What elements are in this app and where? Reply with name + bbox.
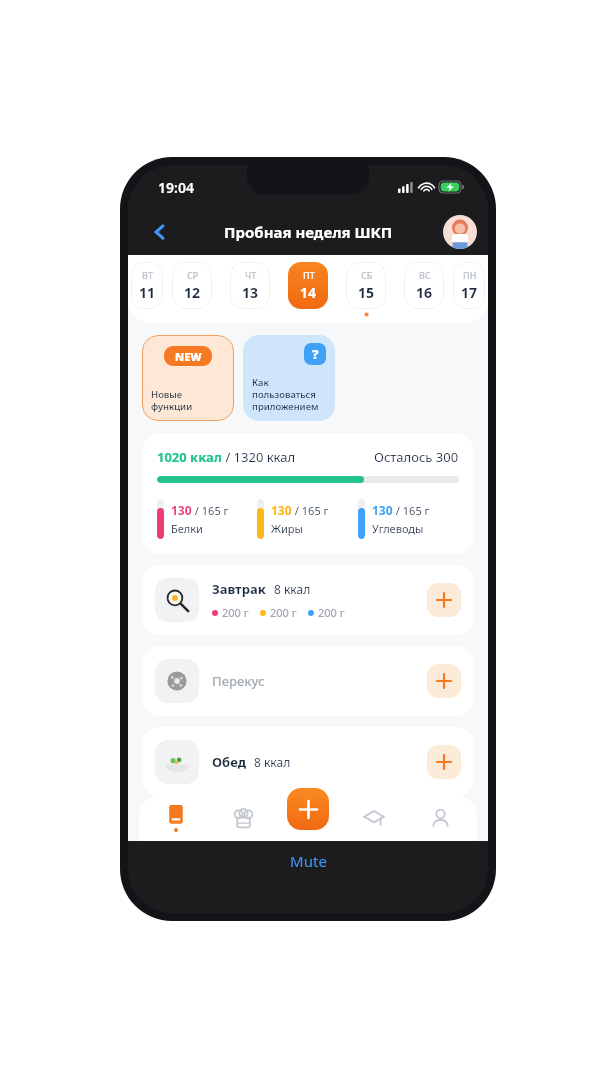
staticText: Новые функции xyxy=(151,388,193,413)
staticText: 8 ккал xyxy=(254,754,291,770)
staticText: Обед xyxy=(212,753,246,771)
staticText: 8 ккал xyxy=(274,581,311,597)
staticText: 14 xyxy=(300,283,317,302)
button[interactable]: ПТ xyxy=(288,262,328,309)
staticText: / 165 г xyxy=(292,503,329,518)
staticText: / 1320 ккал xyxy=(222,448,296,466)
staticText: 12 xyxy=(184,283,201,302)
staticText: СР xyxy=(187,269,199,281)
staticText: Белки xyxy=(171,521,203,536)
button[interactable]: Profile xyxy=(416,795,464,841)
button[interactable]: СР xyxy=(172,262,212,309)
button[interactable]: Learn xyxy=(350,795,398,841)
staticText: 15 xyxy=(358,283,375,302)
staticText: 200 г xyxy=(318,605,345,620)
button[interactable]: Add Завтрак xyxy=(427,583,461,617)
button[interactable]: Add Обед xyxy=(427,745,461,779)
button[interactable]: Back xyxy=(142,214,178,250)
button[interactable]: Обед xyxy=(142,727,474,797)
staticText: / 165 г xyxy=(393,503,430,518)
staticText: ПН xyxy=(463,269,477,281)
staticText: 19:04 xyxy=(158,178,194,197)
staticText: ЧТ xyxy=(245,269,257,281)
button[interactable]: ЧТ xyxy=(230,262,270,309)
staticText: Перекус xyxy=(212,672,265,690)
staticText: ВС xyxy=(419,269,431,281)
staticText: 16 xyxy=(416,283,433,302)
button[interactable]: ВС xyxy=(404,262,444,309)
button[interactable]: Mute xyxy=(290,851,327,871)
button[interactable]: Add Перекус xyxy=(427,664,461,698)
button[interactable]: Перекус xyxy=(142,646,474,716)
staticText: 13 xyxy=(242,283,259,302)
staticText: 130 xyxy=(372,502,393,518)
staticText: Жиры xyxy=(271,521,303,536)
staticText: ВТ xyxy=(142,269,153,281)
staticText: 17 xyxy=(461,283,478,302)
staticText: NEW xyxy=(175,349,202,364)
staticText: СБ xyxy=(361,269,373,281)
button[interactable]: Recipes xyxy=(219,795,267,841)
button[interactable]: Diary xyxy=(152,795,200,841)
button[interactable]: 1020 ккал xyxy=(142,433,474,554)
button[interactable]: Завтрак xyxy=(142,565,474,635)
button[interactable]: NEW xyxy=(142,335,234,421)
staticText: / 165 г xyxy=(192,503,229,518)
button[interactable]: ВТ xyxy=(131,262,163,309)
staticText: Завтрак xyxy=(212,580,266,598)
staticText: 200 г xyxy=(222,605,249,620)
button[interactable]: Add xyxy=(287,788,329,830)
button[interactable]: ПН xyxy=(453,262,485,309)
staticText: Пробная неделя ШКП xyxy=(224,222,393,242)
staticText: 130 xyxy=(171,502,192,518)
button[interactable]: СБ xyxy=(346,262,386,309)
staticText: Как пользоваться приложением xyxy=(252,376,319,413)
staticText: Осталось 300 xyxy=(374,448,459,466)
staticText: 1020 ккал xyxy=(157,448,222,466)
staticText: ? xyxy=(312,345,319,363)
staticText: Углеводы xyxy=(372,521,424,536)
button[interactable]: Profile xyxy=(443,215,477,249)
staticText: ПТ xyxy=(303,269,315,281)
button[interactable]: ? xyxy=(243,335,335,421)
staticText: 11 xyxy=(139,283,156,302)
staticText: 130 xyxy=(271,502,292,518)
staticText: 200 г xyxy=(270,605,297,620)
